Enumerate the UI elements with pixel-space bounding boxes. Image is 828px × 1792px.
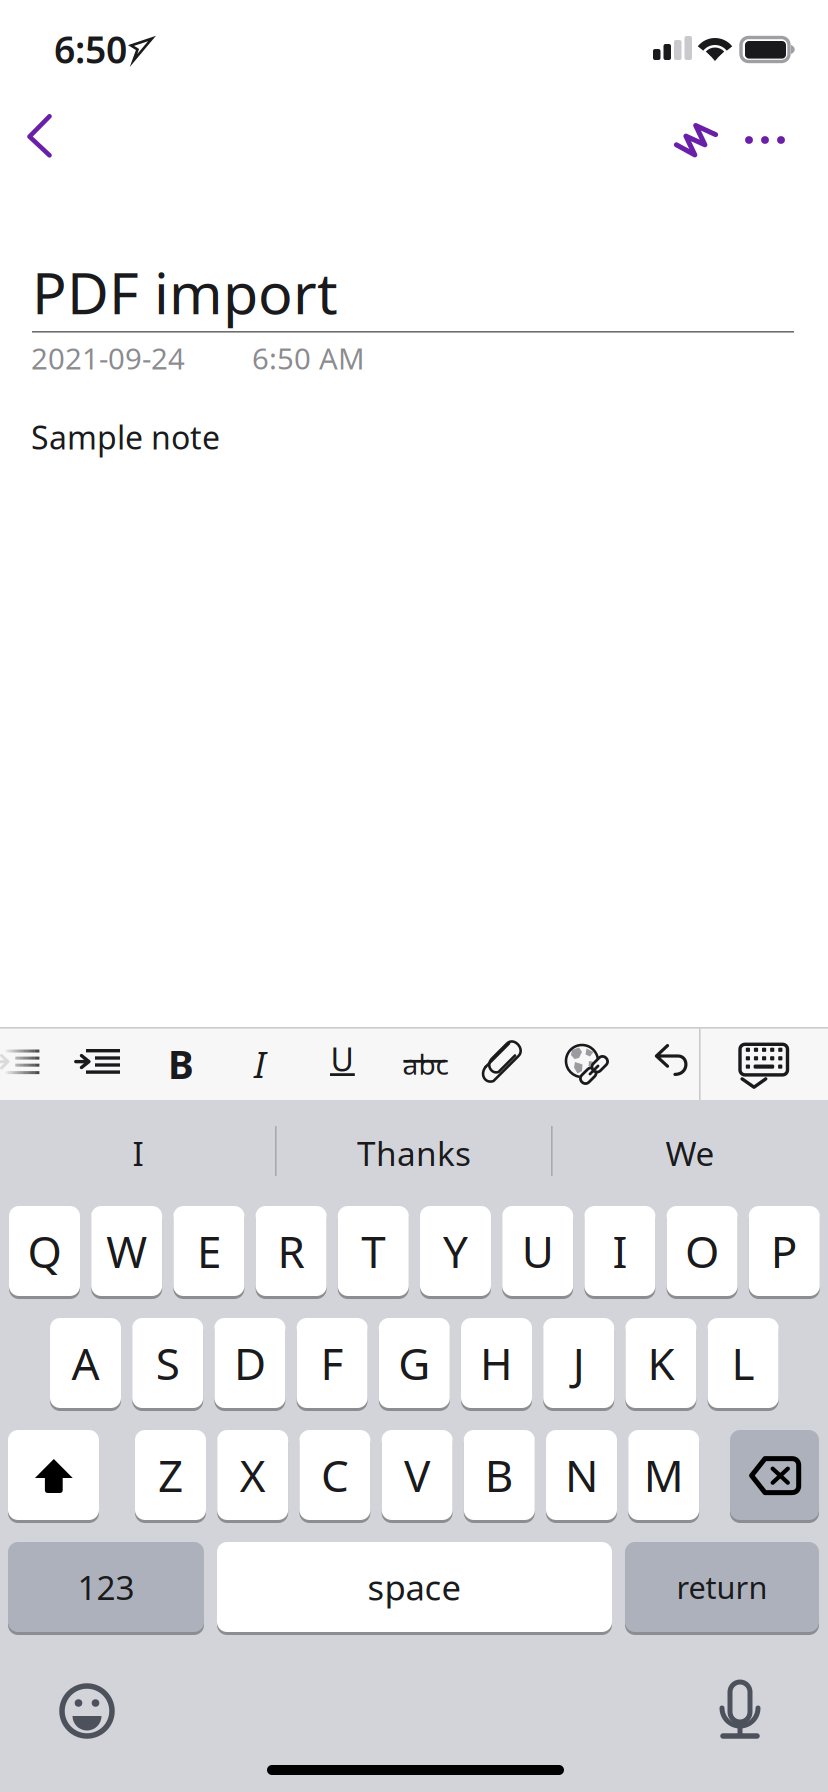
button[interactable]: V — [382, 1430, 453, 1523]
button[interactable]: Back — [10, 93, 100, 181]
button[interactable]: Undo — [625, 1028, 701, 1100]
staticText: A — [71, 1334, 99, 1392]
button[interactable]: Q — [9, 1206, 80, 1299]
button[interactable]: B — [142, 1028, 220, 1100]
button[interactable]: J — [543, 1318, 614, 1411]
button[interactable]: T — [338, 1206, 409, 1299]
staticText: return — [676, 1567, 767, 1607]
staticText: L — [732, 1334, 755, 1392]
button[interactable]: Shift — [8, 1430, 99, 1523]
button[interactable]: P — [749, 1206, 820, 1299]
staticText: space — [367, 1564, 461, 1610]
button[interactable]: I — [220, 1028, 300, 1100]
staticText: T — [361, 1222, 385, 1280]
staticText: I — [132, 1131, 143, 1175]
staticText: M — [644, 1446, 684, 1504]
button[interactable]: G — [379, 1318, 450, 1411]
button[interactable]: Delete — [730, 1430, 819, 1523]
staticText: 123 — [77, 1565, 134, 1609]
button[interactable]: O — [667, 1206, 738, 1299]
staticText: 6:50 — [54, 24, 127, 74]
button[interactable]: Underline — [300, 1028, 384, 1100]
staticText: D — [234, 1334, 266, 1392]
button[interactable]: Emoji — [37, 1661, 137, 1761]
staticText: V — [404, 1446, 430, 1504]
button[interactable]: Draw — [655, 100, 745, 180]
staticText: R — [278, 1222, 305, 1280]
button[interactable]: A — [50, 1318, 121, 1411]
staticText: W — [106, 1222, 147, 1280]
staticText: H — [480, 1334, 513, 1392]
staticText: X — [240, 1446, 266, 1504]
button[interactable]: X — [217, 1430, 288, 1523]
staticText: Thanks — [357, 1131, 471, 1175]
button[interactable]: We — [552, 1100, 828, 1206]
button[interactable]: I — [0, 1100, 276, 1206]
staticText: U — [522, 1222, 554, 1280]
button[interactable]: Y — [420, 1206, 491, 1299]
button[interactable]: M — [628, 1430, 699, 1523]
button[interactable]: Attach file — [466, 1028, 544, 1100]
button[interactable]: Increase indent — [62, 1028, 142, 1100]
button[interactable]: W — [91, 1206, 162, 1299]
button[interactable]: L — [708, 1318, 779, 1411]
button[interactable]: Dictate — [690, 1661, 790, 1761]
staticText: S — [156, 1334, 180, 1392]
button[interactable]: 123 — [8, 1542, 204, 1635]
staticText: F — [321, 1334, 344, 1392]
staticText: Sample note — [31, 416, 220, 458]
button[interactable]: N — [546, 1430, 617, 1523]
button[interactable]: U — [502, 1206, 573, 1299]
staticText: G — [398, 1334, 430, 1392]
button[interactable]: R — [256, 1206, 327, 1299]
button[interactable]: C — [299, 1430, 370, 1523]
staticText: 6:50 AM — [252, 338, 365, 377]
staticText: abc — [402, 1045, 448, 1083]
staticText: P — [771, 1222, 798, 1280]
staticText: PDF import — [32, 254, 338, 330]
button[interactable]: Hide keyboard — [702, 1028, 828, 1100]
button[interactable]: return — [625, 1542, 819, 1635]
staticText: Q — [27, 1222, 61, 1280]
staticText: I — [612, 1222, 627, 1280]
button[interactable]: More options — [736, 100, 806, 180]
button[interactable]: B — [464, 1430, 535, 1523]
button[interactable]: E — [173, 1206, 244, 1299]
button[interactable]: F — [297, 1318, 368, 1411]
button[interactable]: Thanks — [276, 1100, 552, 1206]
staticText: C — [321, 1446, 349, 1504]
staticText: J — [573, 1334, 585, 1392]
staticText: I — [254, 1040, 266, 1088]
button[interactable]: H — [461, 1318, 532, 1411]
button[interactable]: space — [217, 1542, 612, 1635]
button[interactable]: Decrease indent — [0, 1028, 62, 1100]
staticText: U — [330, 1038, 353, 1080]
staticText: Y — [443, 1222, 468, 1280]
button[interactable]: Z — [135, 1430, 206, 1523]
button[interactable]: I — [584, 1206, 655, 1299]
staticText: Z — [158, 1446, 183, 1504]
button[interactable]: S — [132, 1318, 203, 1411]
staticText: K — [647, 1334, 674, 1392]
button[interactable]: D — [214, 1318, 285, 1411]
staticText: O — [685, 1222, 719, 1280]
staticText: We — [665, 1131, 714, 1175]
staticText: 2021-09-24 — [31, 338, 185, 377]
button[interactable]: Strikethrough — [384, 1028, 466, 1100]
button[interactable]: K — [625, 1318, 696, 1411]
staticText: B — [485, 1446, 514, 1504]
button[interactable]: Insert link — [545, 1028, 625, 1100]
staticText: N — [565, 1446, 598, 1504]
staticText: E — [197, 1222, 221, 1280]
staticText: B — [168, 1038, 194, 1090]
